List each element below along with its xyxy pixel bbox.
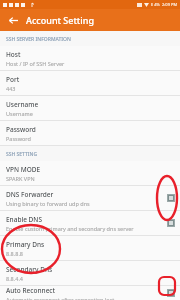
staticText: Password xyxy=(6,135,31,142)
button[interactable]: Username xyxy=(0,96,180,120)
staticText: VPN MODE xyxy=(6,165,41,174)
button[interactable]: Auto Reconnect xyxy=(0,286,180,300)
staticText: SPARK VPN xyxy=(6,175,35,182)
staticText: Primary Dns xyxy=(6,240,45,249)
staticText: Host xyxy=(6,50,21,59)
staticText: DNS Forwarder xyxy=(6,190,54,199)
button[interactable]: Back xyxy=(5,12,21,28)
staticText: Password xyxy=(6,125,36,134)
staticText: Host / IP of SSH Server xyxy=(6,60,65,67)
staticText: Username xyxy=(6,110,33,117)
button[interactable]: DNS Forwarder xyxy=(0,186,180,210)
staticText: Auto Reconnect xyxy=(6,286,56,295)
staticText: 2:09 PM xyxy=(162,2,178,7)
button[interactable]: Port xyxy=(0,71,180,95)
staticText: Enable DNS xyxy=(6,215,42,224)
staticText: 8.8.4.4 xyxy=(6,275,24,282)
staticText: Username xyxy=(6,100,39,109)
staticText: Account Setting xyxy=(26,14,94,26)
staticText: SSH SERVER INFORMATION xyxy=(6,36,71,43)
staticText: Enable custom primary and secondary dns … xyxy=(6,225,134,232)
button[interactable]: Secondary Dns xyxy=(0,261,180,285)
button[interactable]: Primary Dns xyxy=(0,236,180,260)
staticText: 443 xyxy=(6,85,16,92)
staticText: Secondary Dns xyxy=(6,265,53,274)
staticText: Port xyxy=(6,75,20,84)
button[interactable]: Host xyxy=(0,46,180,70)
staticText: 8.8.8.8 xyxy=(6,250,24,257)
staticText: E 4% xyxy=(151,2,160,7)
staticText: Using binary to forward udp dns xyxy=(6,200,90,207)
staticText: Automatic reconnect after connection los… xyxy=(6,296,115,300)
button[interactable]: VPN MODE xyxy=(0,161,180,185)
button[interactable]: Enable DNS xyxy=(0,211,180,235)
button[interactable]: Password xyxy=(0,121,180,145)
staticText: SSH SETTING xyxy=(6,151,38,158)
